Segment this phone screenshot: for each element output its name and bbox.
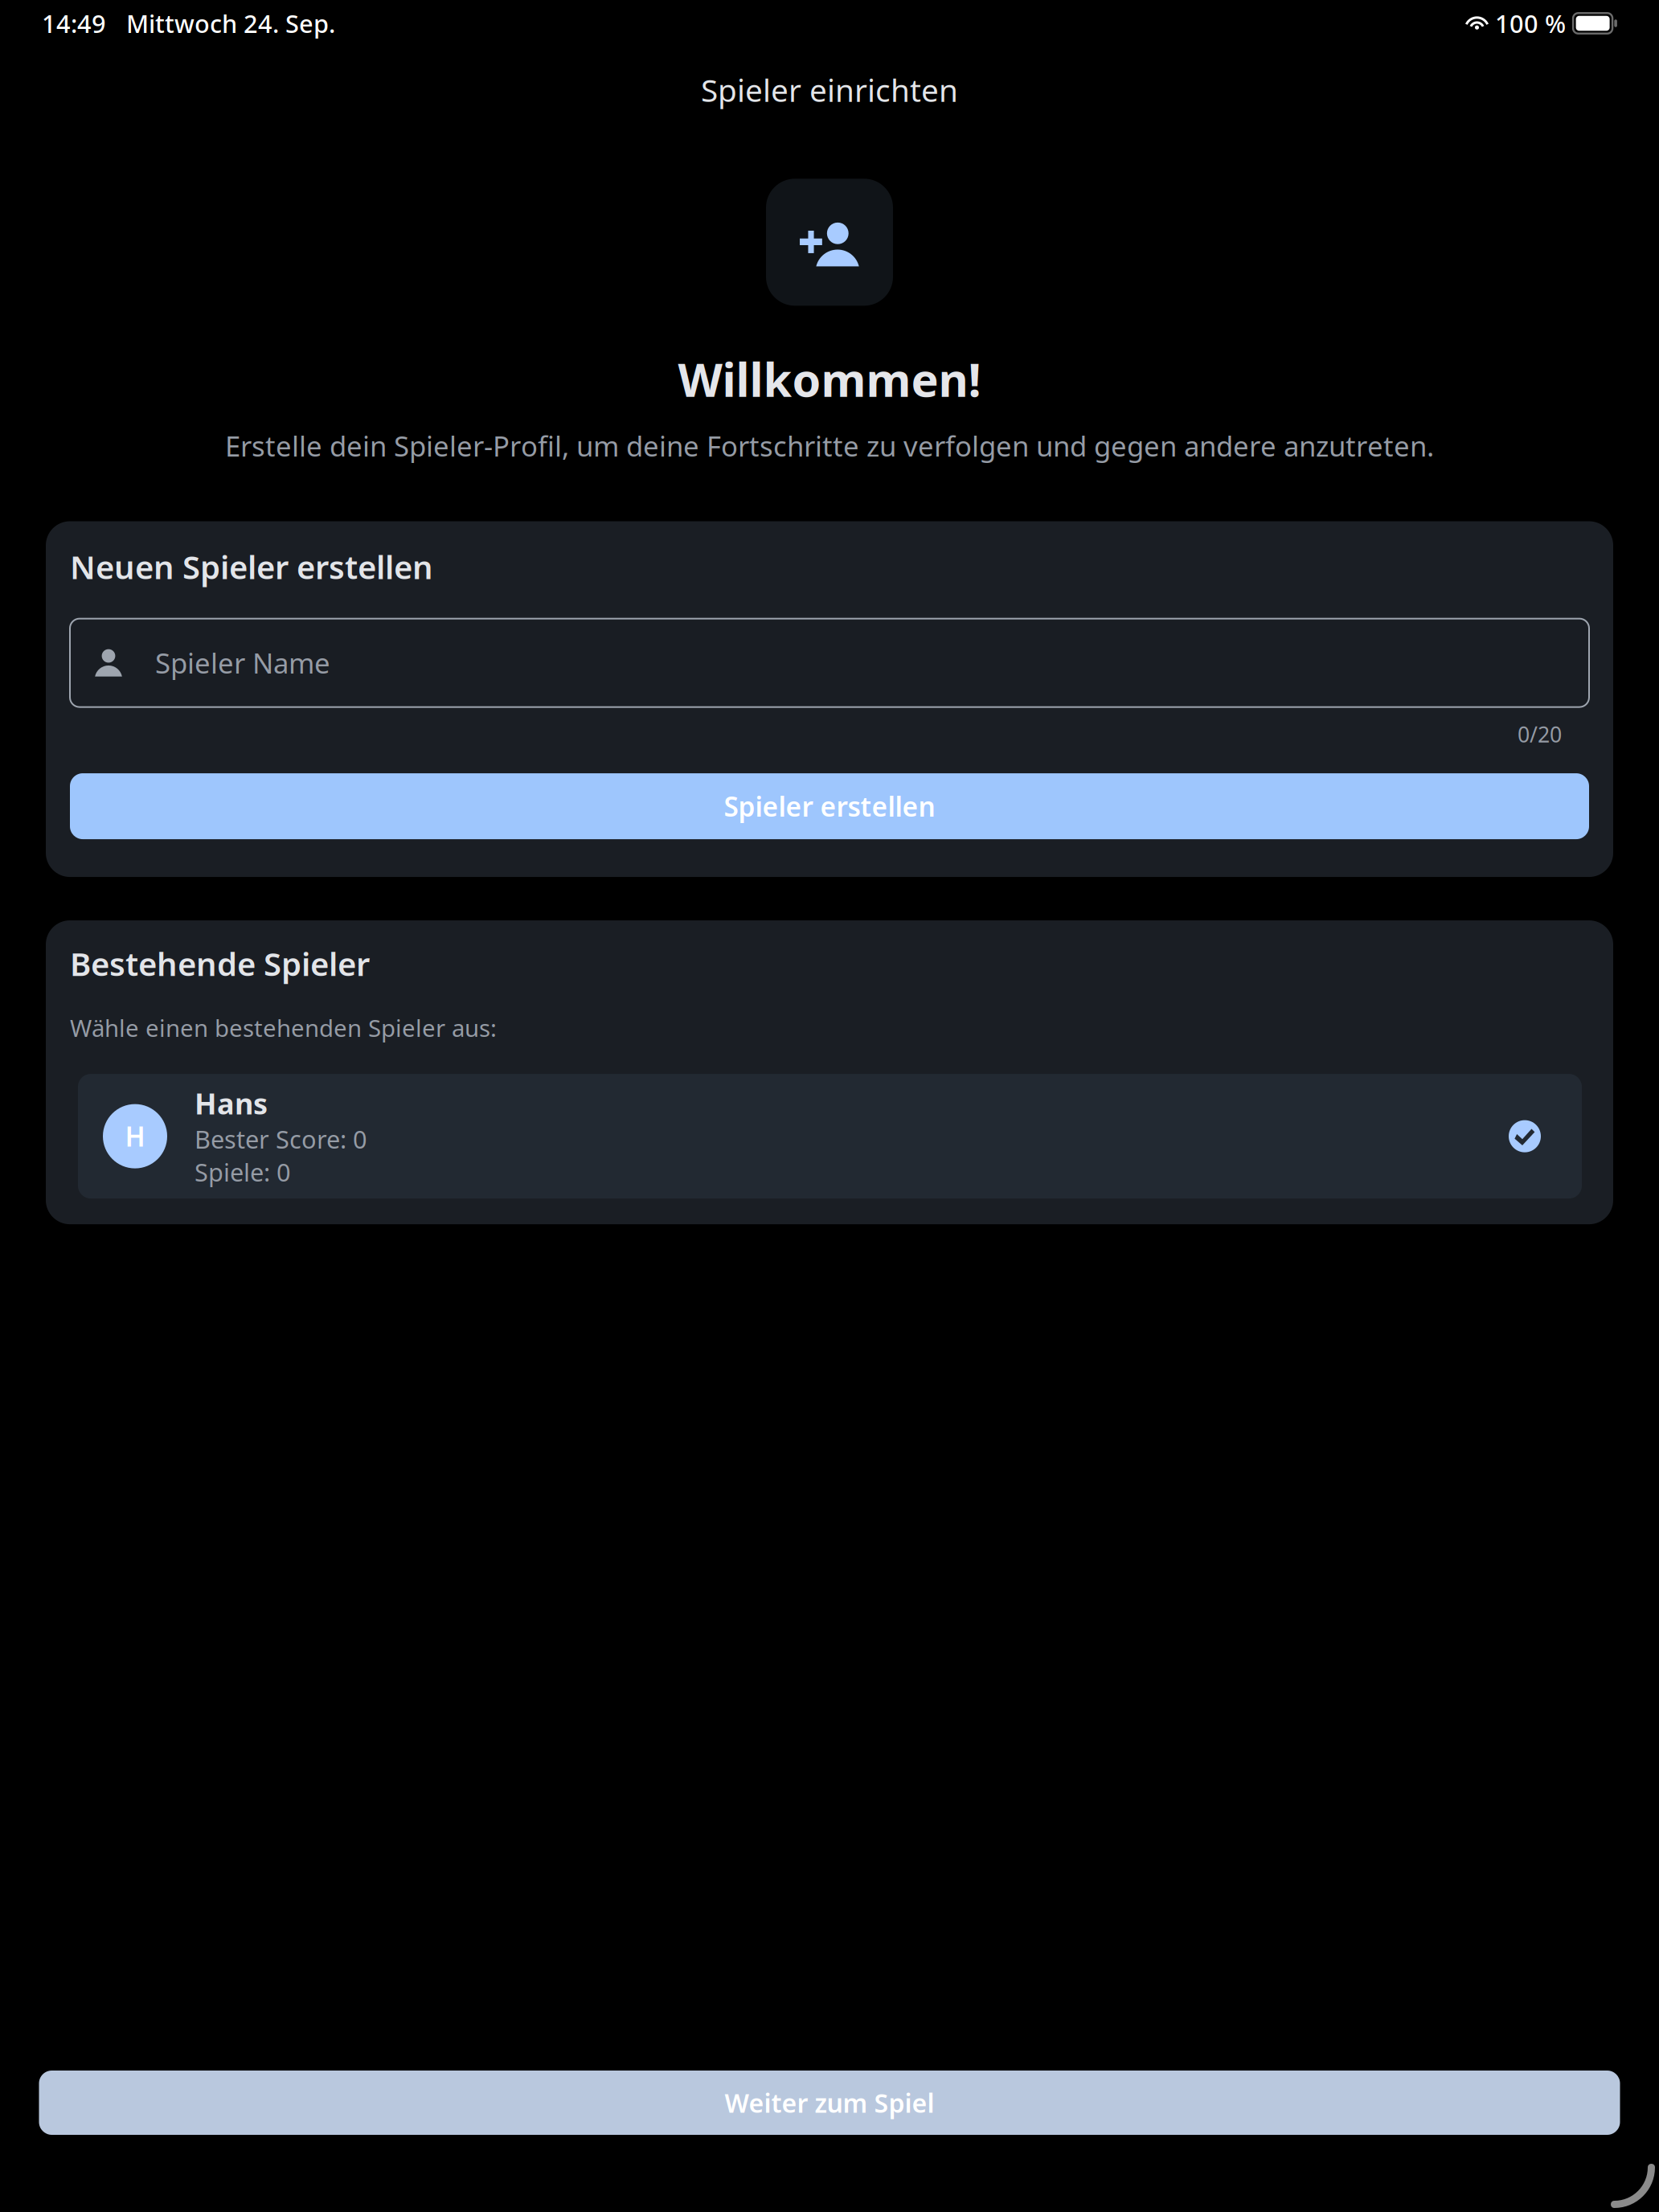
staticText: Hans: [195, 1084, 268, 1122]
staticText: Weiter zum Spiel: [725, 2086, 934, 2120]
staticText: Neuen Spieler erstellen: [70, 545, 433, 588]
staticText: Mittwoch 24. Sep.: [126, 7, 335, 40]
staticText: Erstelle dein Spieler-Profil, um deine F…: [225, 427, 1434, 464]
staticText: Spieler erstellen: [724, 788, 935, 824]
staticText: Bestehende Spieler: [70, 942, 370, 985]
staticText: Wähle einen bestehenden Spieler aus:: [70, 1012, 497, 1043]
staticText: Spieler einrichten: [701, 69, 958, 110]
staticText: Spieler Name: [155, 644, 330, 681]
button[interactable]: Spieler Name: [70, 619, 1589, 707]
staticText: 14:49: [42, 7, 106, 40]
button[interactable]: Weiter zum Spiel: [39, 2071, 1620, 2135]
staticText: 100 %: [1495, 7, 1566, 40]
staticText: Willkommen!: [678, 348, 981, 409]
staticText: 0/20: [1518, 720, 1562, 748]
staticText: H: [125, 1118, 145, 1154]
button[interactable]: Spieler erstellen: [70, 773, 1589, 839]
button[interactable]: H: [70, 1074, 1589, 1199]
staticText: Spiele: 0: [195, 1156, 291, 1188]
staticText: Bester Score: 0: [195, 1123, 367, 1155]
